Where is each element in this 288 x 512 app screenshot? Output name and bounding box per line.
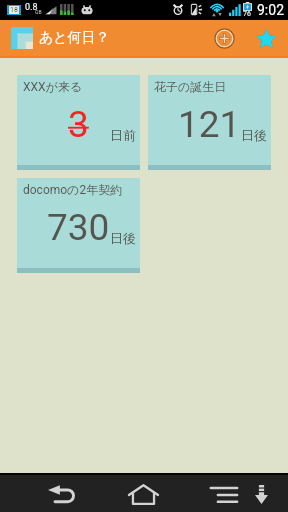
- staticText: 18: [10, 6, 18, 14]
- staticText: XXXが来る: [23, 79, 83, 94]
- staticText: 日後: [241, 127, 267, 143]
- staticText: 日前: [110, 127, 136, 143]
- staticText: docomoの2年契約: [23, 182, 123, 197]
- staticText: 76: [243, 10, 251, 18]
- staticText: 121: [178, 103, 241, 146]
- staticText: 730: [47, 206, 110, 249]
- button[interactable]: Recents: [205, 479, 243, 509]
- button[interactable]: docomoの2年契約: [17, 178, 140, 273]
- staticText: あと何日？: [39, 29, 110, 47]
- button[interactable]: Back: [42, 479, 81, 509]
- staticText: GB: [35, 9, 42, 15]
- button[interactable]: Download: [248, 479, 274, 509]
- staticText: 0.8: [25, 2, 38, 13]
- button[interactable]: Home: [124, 479, 163, 509]
- staticText: 3: [68, 103, 89, 146]
- button[interactable]: Favorites: [248, 20, 284, 56]
- button[interactable]: 花子の誕生日: [148, 75, 271, 170]
- button[interactable]: Add: [206, 20, 242, 56]
- staticText: 花子の誕生日: [154, 79, 227, 94]
- staticText: 日後: [110, 230, 136, 246]
- button[interactable]: XXXが来る: [17, 75, 140, 170]
- staticText: 9:02: [257, 2, 284, 18]
